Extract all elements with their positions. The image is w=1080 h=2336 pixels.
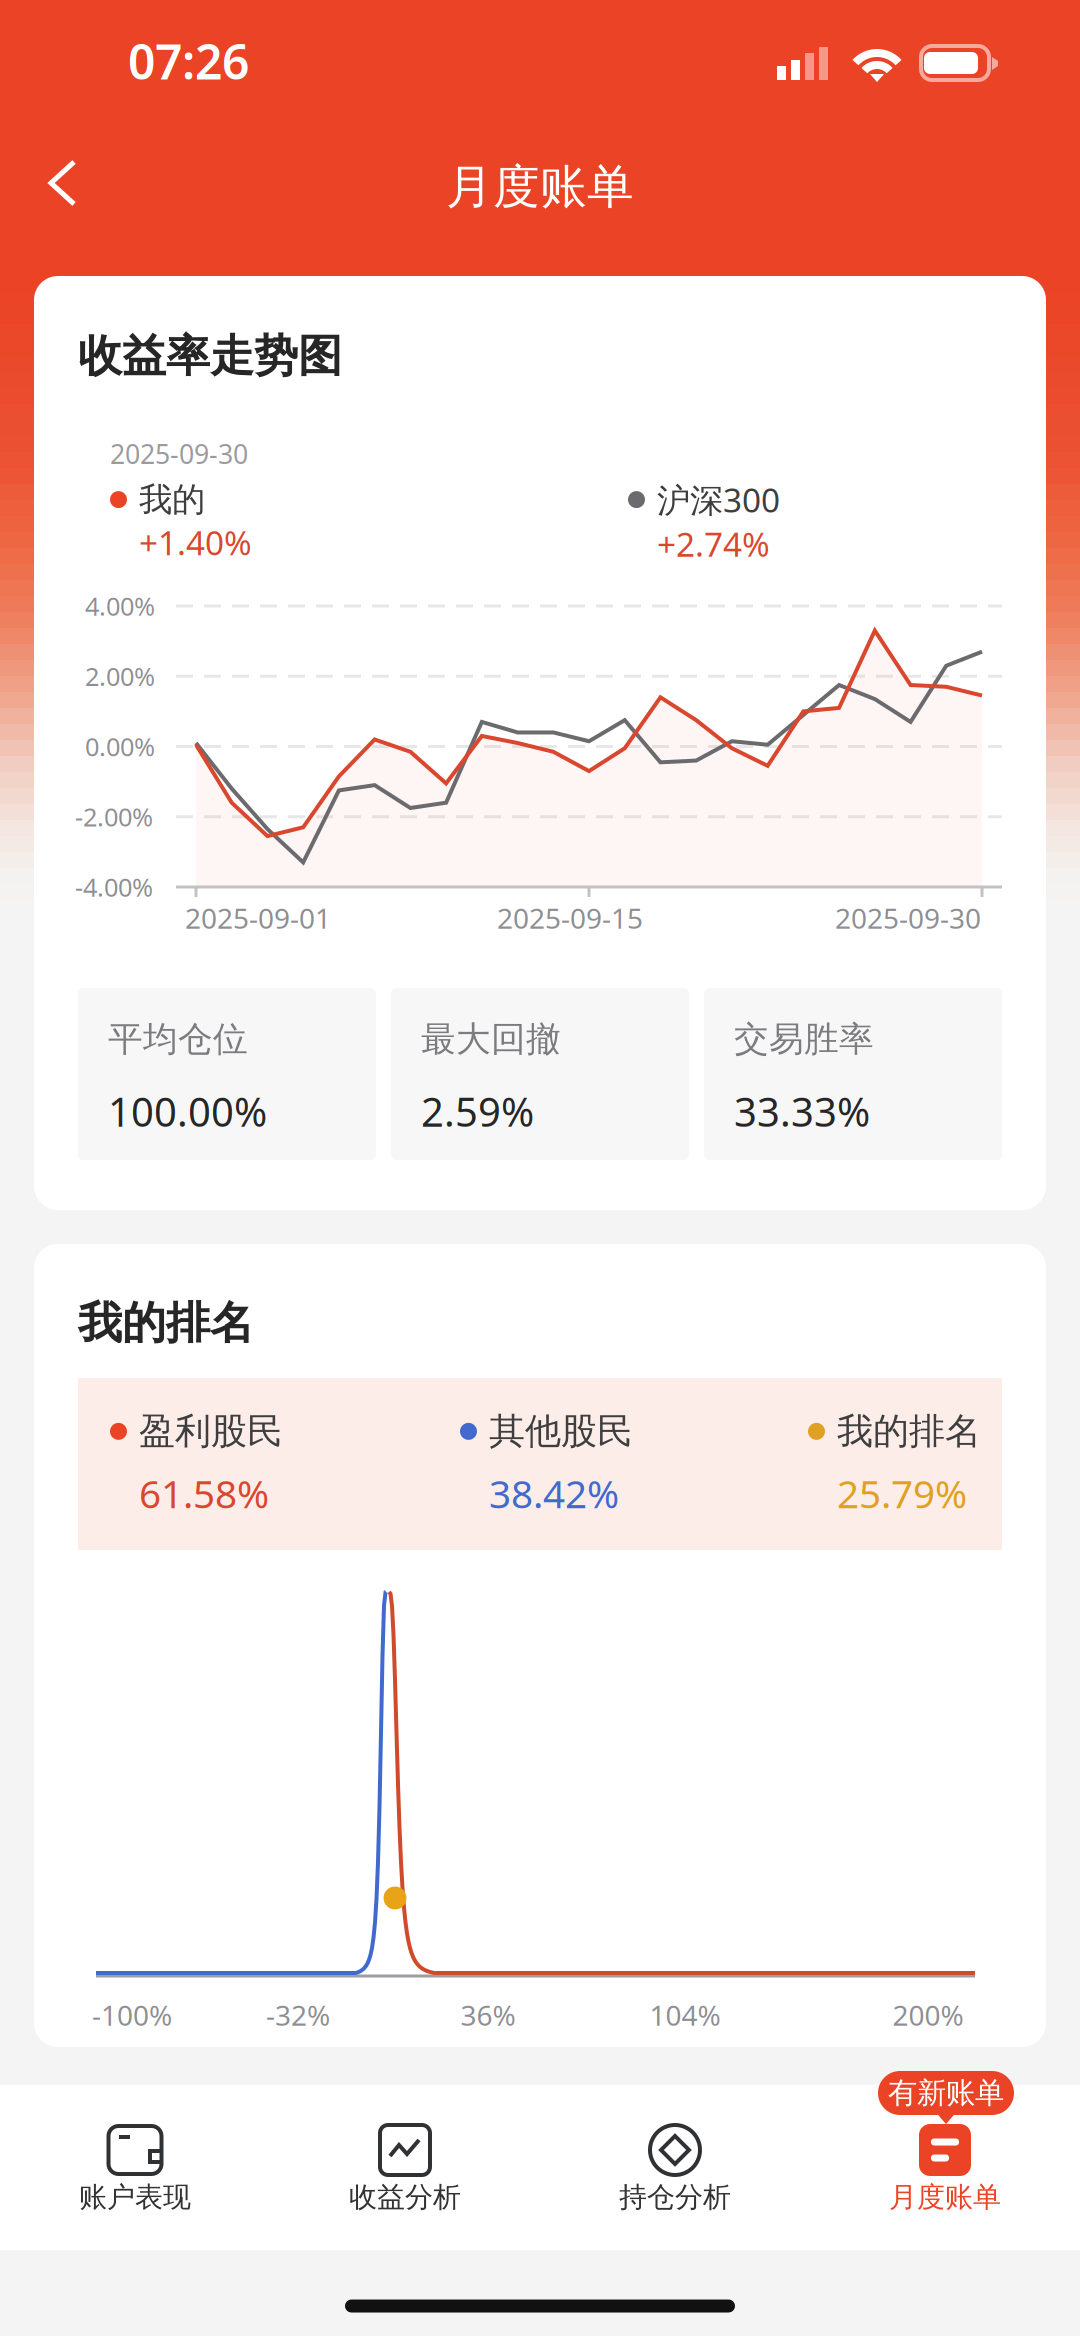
staticText: -4.00% bbox=[75, 870, 153, 904]
staticText: -2.00% bbox=[75, 800, 153, 833]
staticText: 4.00% bbox=[85, 589, 155, 623]
staticText: 61.58% bbox=[139, 1467, 269, 1519]
button[interactable]: 月度账单 bbox=[810, 2085, 1080, 2250]
staticText: 2.00% bbox=[85, 659, 155, 693]
staticText: 平均仓位 bbox=[108, 1018, 248, 1061]
staticText: 2025-09-01 bbox=[185, 899, 331, 937]
staticText: 持仓分析 bbox=[619, 2180, 731, 2214]
staticText: -32% bbox=[266, 1996, 330, 2034]
staticText: 2025-09-30 bbox=[835, 899, 981, 937]
staticText: 盈利股民 bbox=[139, 1409, 283, 1453]
button[interactable]: 收益分析 bbox=[270, 2085, 540, 2250]
staticText: +1.40% bbox=[139, 520, 252, 564]
staticText: 36% bbox=[460, 1996, 515, 2034]
staticText: 38.42% bbox=[489, 1467, 619, 1519]
staticText: 我的排名 bbox=[837, 1409, 981, 1453]
staticText: 07:26 bbox=[128, 29, 249, 93]
staticText: 月度账单 bbox=[446, 158, 634, 216]
staticText: 2025-09-15 bbox=[497, 899, 643, 937]
staticText: 104% bbox=[649, 1996, 720, 2034]
staticText: -100% bbox=[92, 1996, 172, 2034]
staticText: 我的排名 bbox=[78, 1296, 254, 1350]
button[interactable]: 有新账单 bbox=[878, 2071, 1014, 2115]
staticText: 月度账单 bbox=[889, 2180, 1001, 2214]
staticText: 我的 bbox=[139, 479, 205, 520]
staticText: 2.59% bbox=[421, 1085, 534, 1138]
button[interactable]: 持仓分析 bbox=[540, 2085, 810, 2250]
staticText: 账户表现 bbox=[79, 2180, 191, 2214]
staticText: 其他股民 bbox=[489, 1409, 633, 1453]
button[interactable]: 账户表现 bbox=[0, 2085, 270, 2250]
staticText: 沪深300 bbox=[657, 477, 780, 522]
button[interactable]: Back bbox=[0, 138, 120, 260]
staticText: 2025-09-30 bbox=[110, 436, 248, 471]
staticText: 收益率走势图 bbox=[78, 329, 342, 383]
staticText: 33.33% bbox=[734, 1085, 870, 1138]
staticText: 200% bbox=[892, 1996, 963, 2034]
staticText: 交易胜率 bbox=[734, 1018, 874, 1061]
staticText: 最大回撤 bbox=[421, 1018, 561, 1061]
staticText: 100.00% bbox=[108, 1085, 267, 1138]
staticText: 25.79% bbox=[837, 1467, 967, 1519]
staticText: 收益分析 bbox=[349, 2180, 461, 2214]
staticText: 0.00% bbox=[85, 730, 155, 763]
staticText: 有新账单 bbox=[888, 2075, 1004, 2111]
staticText: +2.74% bbox=[657, 522, 770, 566]
